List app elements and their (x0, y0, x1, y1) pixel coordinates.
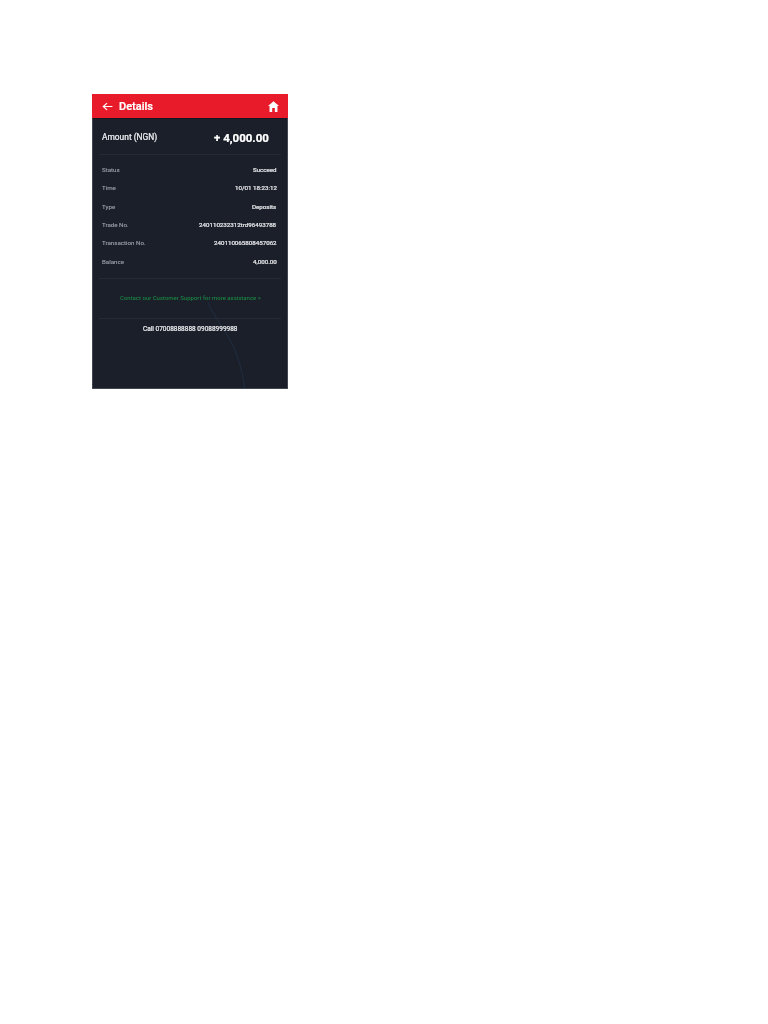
staticText: Contact our Customer Support for more as… (120, 294, 261, 301)
staticText: Status (102, 166, 120, 173)
staticText: Succeed (253, 166, 277, 173)
staticText: Trade No. (102, 221, 129, 228)
button[interactable]: Contact our Customer Support for more as… (92, 288, 288, 307)
staticText: 240110232312trd96493788 (199, 221, 277, 228)
button[interactable]: Home (266, 99, 280, 113)
staticText: Amount (NGN) (102, 132, 158, 142)
staticText: Call 07008888888 09088999988 (143, 325, 238, 333)
staticText: Details (119, 100, 154, 113)
staticText: 4,000.00 (253, 258, 277, 265)
staticText: Deposits (252, 203, 277, 210)
button[interactable]: Back (100, 99, 115, 114)
staticText: Time (102, 184, 116, 191)
staticText: Transaction No. (102, 239, 146, 246)
staticText: 10/01 18:23:12 (235, 184, 277, 191)
staticText: Type (102, 203, 116, 210)
staticText: 240110065808457062 (214, 239, 277, 246)
staticText: + 4,000.00 (214, 131, 269, 144)
staticText: Balance (102, 258, 125, 265)
